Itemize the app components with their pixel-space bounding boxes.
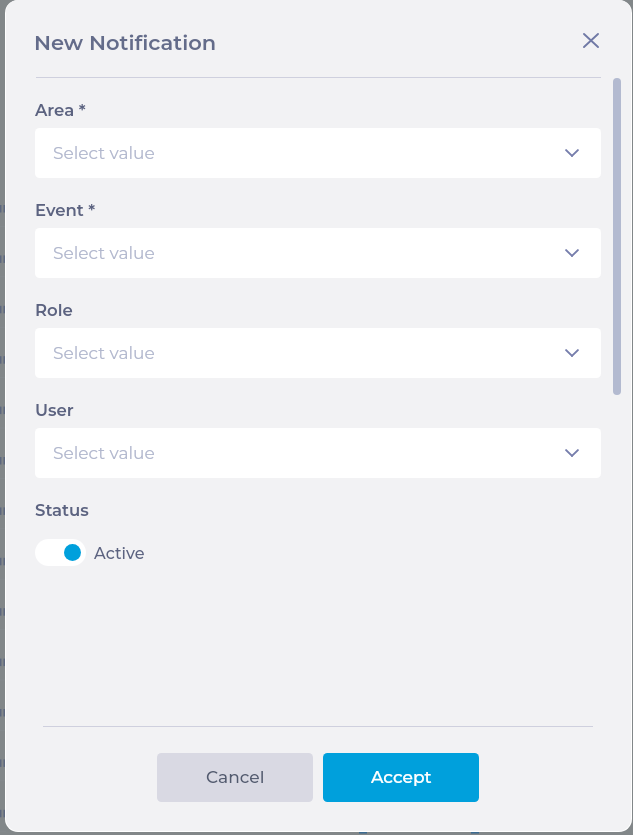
- staticText: Select value: [53, 243, 155, 264]
- button[interactable]: Select value: [35, 128, 601, 178]
- staticText: User: [35, 400, 74, 420]
- button[interactable]: Accept: [323, 753, 479, 802]
- staticText: Select value: [53, 343, 155, 364]
- staticText: Active: [94, 544, 145, 564]
- staticText: Role: [35, 300, 73, 320]
- button[interactable]: Select value: [35, 328, 601, 378]
- button[interactable]: Cancel: [157, 753, 313, 802]
- button[interactable]: Close: [571, 20, 611, 60]
- staticText: Area *: [35, 100, 86, 120]
- staticText: Accept: [371, 767, 432, 788]
- button[interactable]: Select value: [35, 228, 601, 278]
- staticText: Event *: [35, 200, 96, 220]
- button[interactable]: Select value: [35, 428, 601, 478]
- staticText: Status: [35, 500, 89, 520]
- staticText: Cancel: [206, 767, 265, 788]
- staticText: New Notification: [34, 30, 217, 56]
- staticText: Select value: [53, 443, 155, 464]
- staticText: Select value: [53, 143, 155, 164]
- button[interactable]: Active toggle: [35, 539, 86, 566]
